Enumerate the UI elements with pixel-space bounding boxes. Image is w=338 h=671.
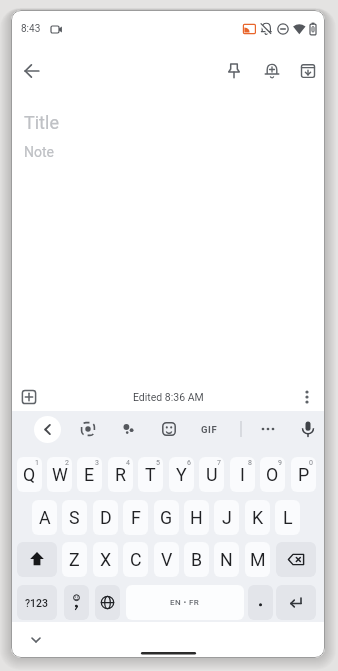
- staticText: E: [84, 464, 95, 485]
- staticText: M: [250, 549, 266, 570]
- button[interactable]: B: [184, 542, 209, 577]
- staticText: 4: [126, 459, 130, 467]
- staticText: D: [100, 507, 112, 528]
- button[interactable]: [222, 59, 246, 83]
- staticText: P: [298, 464, 310, 485]
- staticText: O: [266, 464, 279, 485]
- staticText: 7: [217, 459, 221, 467]
- button[interactable]: M: [245, 542, 270, 577]
- staticText: V: [161, 549, 173, 570]
- button[interactable]: E: [77, 457, 102, 492]
- button[interactable]: K: [245, 500, 270, 535]
- staticText: ?123: [25, 597, 49, 609]
- button[interactable]: [276, 542, 316, 577]
- staticText: Note: [24, 144, 54, 160]
- staticText: F: [131, 507, 141, 528]
- button[interactable]: O: [260, 457, 285, 492]
- button[interactable]: [296, 417, 320, 441]
- button[interactable]: [34, 416, 61, 443]
- button[interactable]: [17, 385, 41, 409]
- button[interactable]: [76, 417, 100, 441]
- staticText: Title: [24, 112, 59, 133]
- button[interactable]: [248, 585, 273, 620]
- staticText: 3: [95, 459, 99, 467]
- button[interactable]: U: [199, 457, 224, 492]
- staticText: C: [130, 549, 142, 570]
- staticText: 2: [65, 459, 69, 467]
- staticText: 1: [35, 459, 39, 467]
- button[interactable]: W: [47, 457, 72, 492]
- staticText: 0: [309, 459, 313, 467]
- staticText: I: [240, 464, 245, 485]
- button[interactable]: [17, 542, 57, 577]
- staticText: 8:43: [21, 23, 41, 35]
- button[interactable]: I: [230, 457, 255, 492]
- button[interactable]: [20, 59, 44, 83]
- button[interactable]: [64, 585, 89, 620]
- button[interactable]: [256, 417, 280, 441]
- button[interactable]: A: [32, 500, 57, 535]
- staticText: H: [190, 507, 203, 528]
- button[interactable]: [260, 59, 284, 83]
- button[interactable]: V: [154, 542, 179, 577]
- button[interactable]: [95, 585, 120, 620]
- staticText: Q: [23, 464, 36, 485]
- button[interactable]: [27, 631, 45, 649]
- button[interactable]: Y: [169, 457, 194, 492]
- staticText: X: [100, 549, 112, 570]
- staticText: B: [191, 549, 203, 570]
- button[interactable]: R: [108, 457, 133, 492]
- staticText: 5: [156, 459, 160, 467]
- staticText: U: [206, 464, 218, 485]
- staticText: 6: [187, 459, 191, 467]
- staticText: Z: [69, 549, 80, 570]
- staticText: 9: [278, 459, 282, 467]
- button[interactable]: C: [123, 542, 148, 577]
- button[interactable]: J: [214, 500, 239, 535]
- button[interactable]: G: [154, 500, 179, 535]
- staticText: S: [69, 507, 80, 528]
- button[interactable]: Z: [62, 542, 87, 577]
- button[interactable]: [295, 385, 319, 409]
- button[interactable]: F: [123, 500, 148, 535]
- button[interactable]: P: [291, 457, 316, 492]
- button[interactable]: [296, 59, 320, 83]
- button[interactable]: N: [214, 542, 239, 577]
- staticText: T: [145, 464, 156, 485]
- staticText: K: [252, 507, 264, 528]
- staticText: R: [115, 464, 126, 485]
- button[interactable]: S: [62, 500, 87, 535]
- button[interactable]: [276, 585, 316, 620]
- staticText: G: [160, 507, 173, 528]
- staticText: Y: [176, 464, 187, 485]
- button[interactable]: H: [184, 500, 209, 535]
- staticText: GIF: [201, 424, 218, 435]
- button[interactable]: D: [93, 500, 118, 535]
- staticText: W: [52, 464, 68, 485]
- staticText: L: [283, 507, 293, 528]
- staticText: N: [220, 549, 233, 570]
- button[interactable]: Q: [17, 457, 42, 492]
- button[interactable]: [116, 417, 140, 441]
- button[interactable]: [157, 417, 181, 441]
- button[interactable]: X: [93, 542, 118, 577]
- button[interactable]: ?123: [17, 585, 57, 620]
- staticText: Edited 8:36 AM: [133, 391, 204, 403]
- button[interactable]: T: [138, 457, 163, 492]
- button[interactable]: [126, 585, 244, 620]
- button[interactable]: L: [275, 500, 300, 535]
- staticText: 8: [248, 459, 252, 467]
- staticText: EN • FR: [170, 598, 200, 607]
- staticText: A: [39, 507, 51, 528]
- button[interactable]: GIF: [196, 418, 222, 440]
- staticText: J: [222, 507, 232, 528]
